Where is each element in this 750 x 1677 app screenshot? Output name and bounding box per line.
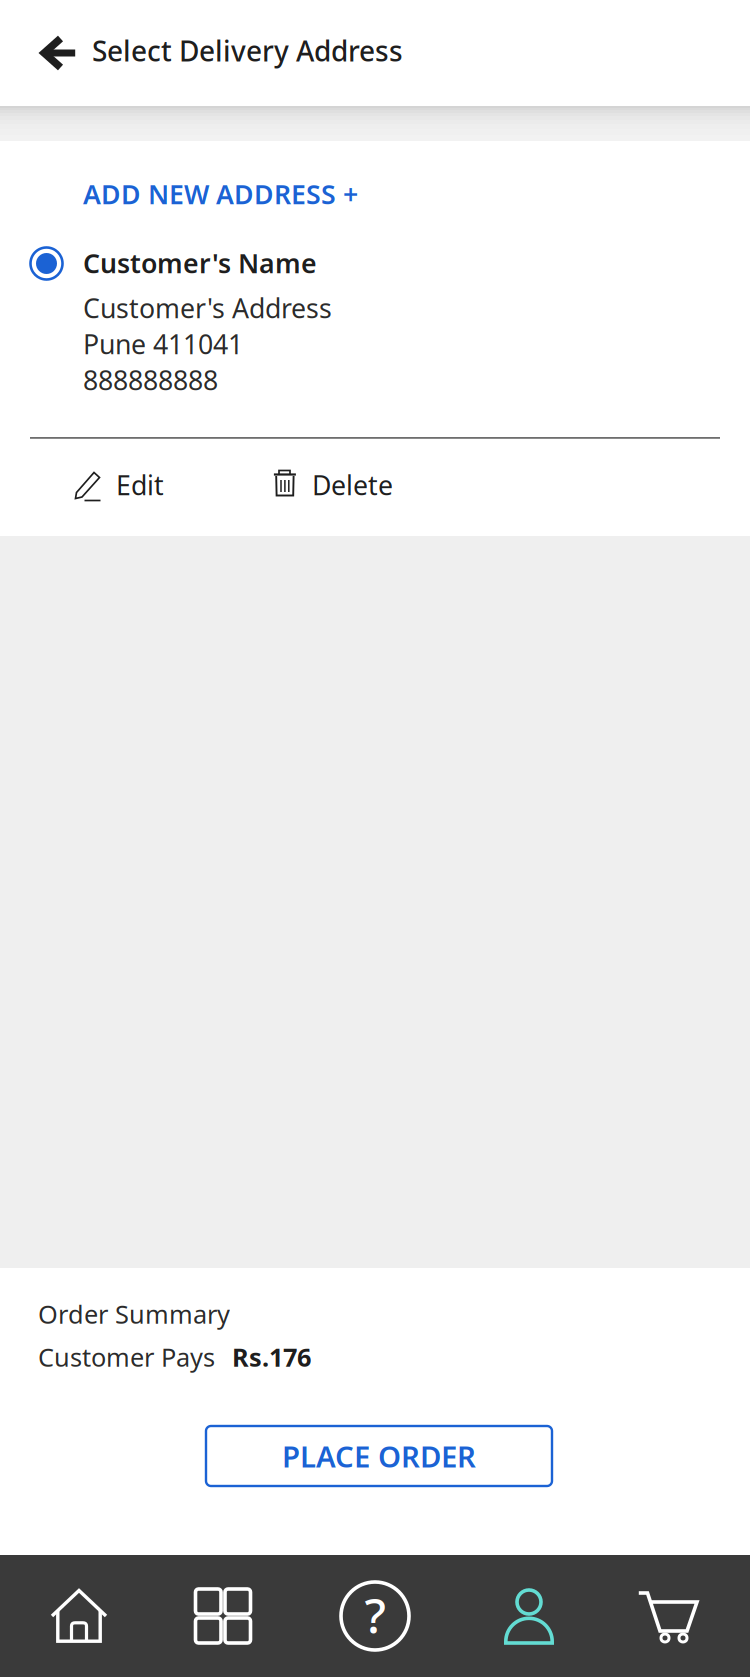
button[interactable]: Edit <box>72 457 207 515</box>
staticText: Rs.176 <box>232 1340 311 1374</box>
staticText: Delete <box>312 467 393 503</box>
staticText: Edit <box>116 467 164 503</box>
button[interactable]: Back <box>18 0 98 106</box>
staticText: ? <box>364 1583 385 1647</box>
staticText: Customer Pays <box>38 1340 215 1374</box>
button[interactable]: ADD NEW ADDRESS + <box>83 170 383 218</box>
staticText: Customer's Name <box>83 245 317 281</box>
button[interactable]: Categories <box>150 1555 300 1677</box>
button[interactable]: Account <box>450 1555 600 1677</box>
button[interactable]: PLACE ORDER <box>206 1426 552 1486</box>
staticText: 888888888 <box>83 362 218 398</box>
button[interactable]: Home <box>0 1555 150 1677</box>
staticText: Select Delivery Address <box>92 32 403 69</box>
button[interactable]: Customer's Name <box>30 247 720 432</box>
button[interactable]: Help <box>300 1555 450 1677</box>
staticText: Customer's Address <box>83 290 332 326</box>
button[interactable]: Delete <box>274 457 434 515</box>
staticText: ADD NEW ADDRESS + <box>83 176 358 212</box>
staticText: Pune 411041 <box>83 326 243 362</box>
staticText: Order Summary <box>38 1297 230 1331</box>
staticText: PLACE ORDER <box>282 1436 476 1475</box>
button[interactable]: Cart <box>600 1555 750 1677</box>
